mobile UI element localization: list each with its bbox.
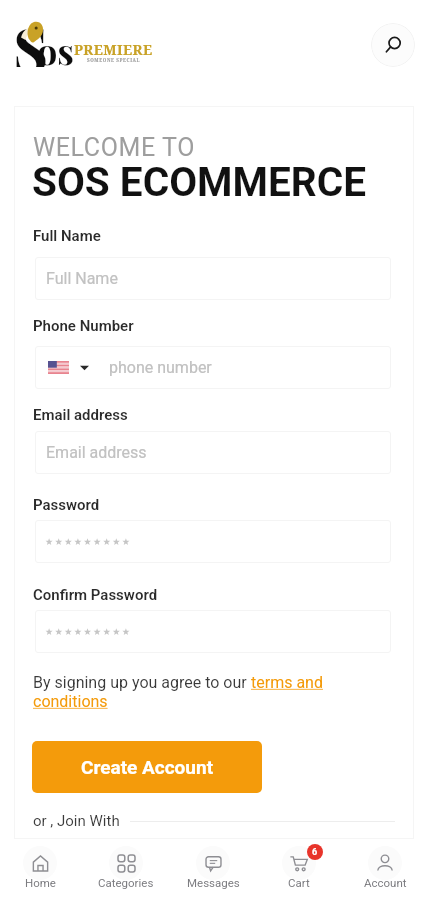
staticText: S [13, 7, 49, 67]
button[interactable]: 6 [259, 839, 339, 900]
button[interactable]: Full Name [46, 257, 378, 300]
staticText: WELCOME TO [33, 133, 196, 162]
staticText: or , Join With [33, 812, 120, 830]
staticText: SOS ECOMMERCE [32, 158, 366, 205]
button[interactable] [46, 520, 378, 563]
staticText: By signing up you agree to our [33, 673, 251, 692]
button[interactable]: Search [371, 23, 415, 67]
staticText: Create Account [81, 756, 214, 778]
button[interactable]: Email address [46, 431, 378, 474]
button[interactable]: phone number [46, 346, 378, 389]
staticText: os [37, 26, 74, 74]
button[interactable]: Create Account [32, 741, 262, 793]
staticText: Confirm Password [33, 586, 158, 604]
staticText: PREMIERE [74, 40, 153, 59]
button[interactable]: Categories [86, 839, 166, 900]
staticText: Email address [33, 406, 128, 424]
staticText: Phone Number [33, 317, 134, 335]
staticText: phone number [109, 358, 212, 377]
staticText: Cart [288, 876, 310, 889]
staticText: Categories [98, 876, 154, 889]
button[interactable]: conditions [33, 692, 108, 711]
button[interactable] [46, 610, 378, 653]
staticText: SOMEONE SPECIAL [87, 57, 141, 63]
staticText: Password [33, 496, 100, 514]
staticText: Home [25, 876, 56, 889]
staticText: 6 [312, 847, 318, 858]
button[interactable]: terms and [251, 673, 323, 692]
staticText: Full Name [33, 227, 101, 245]
button[interactable]: Account [345, 839, 425, 900]
staticText: Full Name [46, 269, 118, 288]
button[interactable]: Home [0, 839, 80, 900]
staticText: Account [364, 876, 407, 889]
staticText: Messages [187, 876, 240, 889]
button[interactable]: Messages [173, 839, 253, 900]
staticText: Email address [46, 443, 147, 462]
